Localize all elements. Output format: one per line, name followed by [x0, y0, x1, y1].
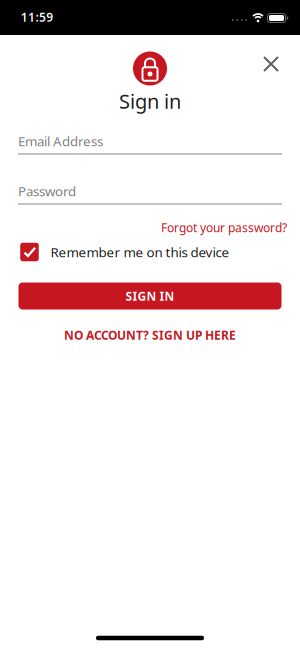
staticText: Sign in — [119, 88, 181, 114]
button[interactable]: NO ACCOUNT? SIGN UP HERE — [64, 327, 236, 343]
button[interactable]: Forgot your password? — [161, 219, 287, 235]
staticText: Forgot your password? — [161, 219, 287, 235]
staticText: Email Address — [18, 132, 103, 150]
staticText: NO ACCOUNT? SIGN UP HERE — [64, 327, 236, 343]
button[interactable]: SIGN IN — [18, 282, 281, 309]
staticText: 11:59 — [21, 9, 53, 25]
staticText: Password — [18, 182, 76, 200]
button[interactable]: Remember me on this device — [20, 243, 280, 261]
staticText: SIGN IN — [125, 288, 174, 304]
staticText: Remember me on this device — [50, 243, 229, 261]
button[interactable] — [261, 54, 281, 74]
